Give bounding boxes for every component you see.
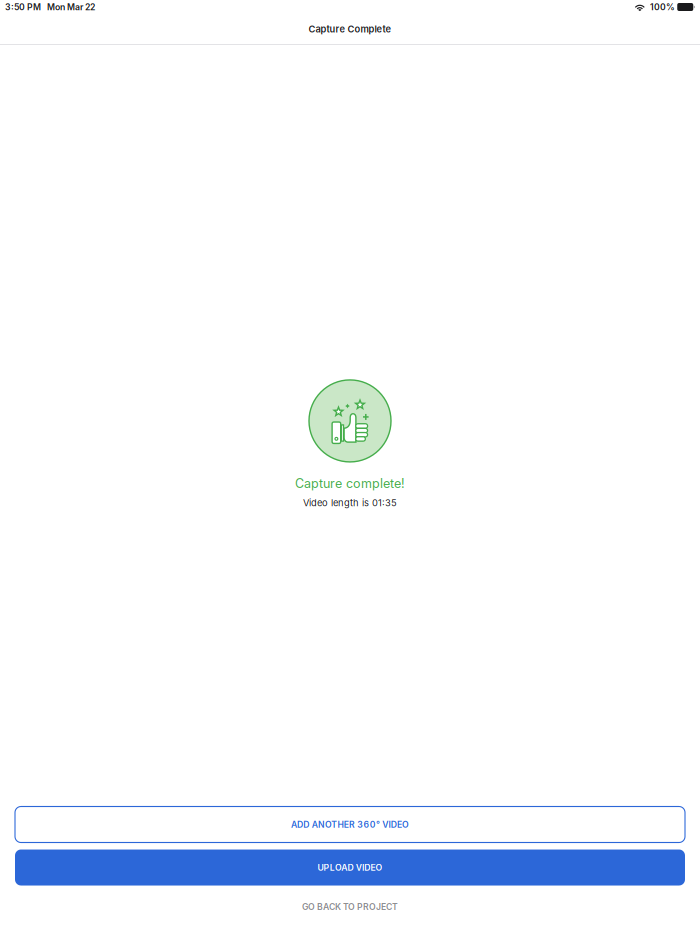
staticText: 3:50 PM bbox=[5, 2, 41, 12]
staticText: Capture Complete bbox=[308, 23, 391, 35]
staticText: ADD ANOTHER 360° VIDEO bbox=[291, 819, 409, 830]
button[interactable]: ADD ANOTHER 360° VIDEO bbox=[15, 806, 685, 842]
staticText: Mon Mar 22 bbox=[41, 2, 95, 12]
button[interactable]: UPLOAD VIDEO bbox=[15, 849, 685, 885]
staticText: Video length is 01:35 bbox=[303, 497, 397, 508]
staticText: UPLOAD VIDEO bbox=[317, 862, 383, 873]
staticText: GO BACK TO PROJECT bbox=[302, 901, 398, 912]
button[interactable]: GO BACK TO PROJECT bbox=[15, 891, 685, 922]
staticText: Capture complete! bbox=[295, 476, 405, 491]
staticText: 100% bbox=[646, 2, 677, 12]
